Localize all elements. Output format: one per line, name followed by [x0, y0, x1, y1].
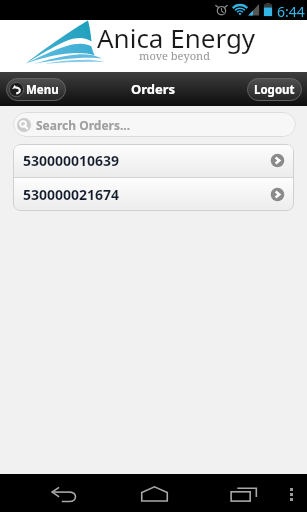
button[interactable]: Back — [30, 476, 98, 512]
staticText: Orders — [131, 80, 176, 98]
other: Open order — [270, 187, 285, 202]
button[interactable]: 530000021674 — [13, 178, 294, 211]
staticText: 530000010639 — [23, 151, 120, 170]
button[interactable]: Menu — [6, 78, 66, 101]
button[interactable]: Logout — [247, 78, 302, 101]
button[interactable]: 530000010639 — [13, 144, 294, 177]
staticText: Menu — [26, 82, 59, 98]
button[interactable]: Search Orders... — [13, 112, 296, 137]
other: Open order — [270, 153, 285, 168]
staticText: move beyond — [139, 48, 210, 63]
button[interactable]: Recent apps — [210, 476, 278, 512]
staticText: Search Orders... — [36, 117, 131, 133]
button[interactable]: Home — [120, 476, 188, 512]
staticText: 6:44 — [277, 2, 305, 21]
staticText: Logout — [254, 82, 295, 98]
button[interactable]: More options — [280, 478, 303, 510]
staticText: 530000021674 — [23, 185, 120, 204]
staticText: Anica Energy — [97, 20, 256, 55]
